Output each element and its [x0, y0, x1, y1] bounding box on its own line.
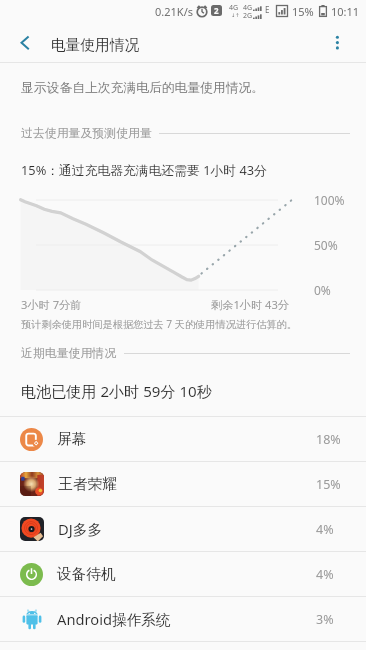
staticText: 15%: [316, 476, 341, 493]
staticText: 过去使用量及预测使用量: [21, 126, 152, 141]
staticText: 剩余1小时 43分: [211, 297, 290, 312]
staticText: ↓↑: [231, 12, 240, 18]
button[interactable]: 设备待机: [0, 552, 366, 596]
staticText: 3%: [316, 611, 334, 628]
button[interactable]: Android操作系统: [0, 597, 366, 641]
staticText: DJ多多: [58, 519, 103, 539]
staticText: 2G: [243, 11, 253, 21]
staticText: 设备待机: [57, 565, 116, 584]
staticText: 电量使用情况: [51, 36, 140, 55]
button[interactable]: 王者荣耀: [0, 462, 366, 506]
staticText: 预计剩余使用时间是根据您过去 7 天的使用情况进行估算的。: [21, 317, 297, 331]
staticText: 15%：通过充电器充满电还需要 1小时 43分: [21, 161, 267, 178]
button[interactable]: DJ多多: [0, 507, 366, 551]
staticText: 近期电量使用情况: [21, 346, 117, 361]
staticText: 屏幕: [57, 430, 87, 449]
staticText: Android操作系统: [57, 609, 171, 629]
staticText: 4%: [316, 521, 334, 538]
staticText: 3小时 7分前: [21, 297, 82, 312]
button[interactable]: More options: [320, 22, 366, 62]
staticText: 2: [214, 5, 219, 16]
staticText: E: [265, 4, 270, 15]
button[interactable]: Back: [2, 22, 46, 62]
staticText: 10:11: [331, 4, 360, 19]
staticText: 王者荣耀: [58, 475, 117, 494]
staticText: 电池已使用 2小时 59分 10秒: [21, 381, 212, 402]
staticText: 50%: [314, 237, 338, 253]
staticText: 0.21K/s: [155, 4, 193, 19]
button[interactable]: 屏幕: [0, 417, 366, 461]
staticText: 4G: [229, 3, 239, 13]
staticText: 显示设备自上次充满电后的电量使用情况。: [21, 80, 265, 96]
staticText: 0%: [314, 282, 331, 298]
staticText: 15%: [292, 4, 314, 19]
staticText: 4%: [316, 566, 334, 583]
staticText: 4G: [243, 3, 253, 13]
staticText: 100%: [314, 192, 345, 208]
staticText: 18%: [316, 431, 341, 448]
